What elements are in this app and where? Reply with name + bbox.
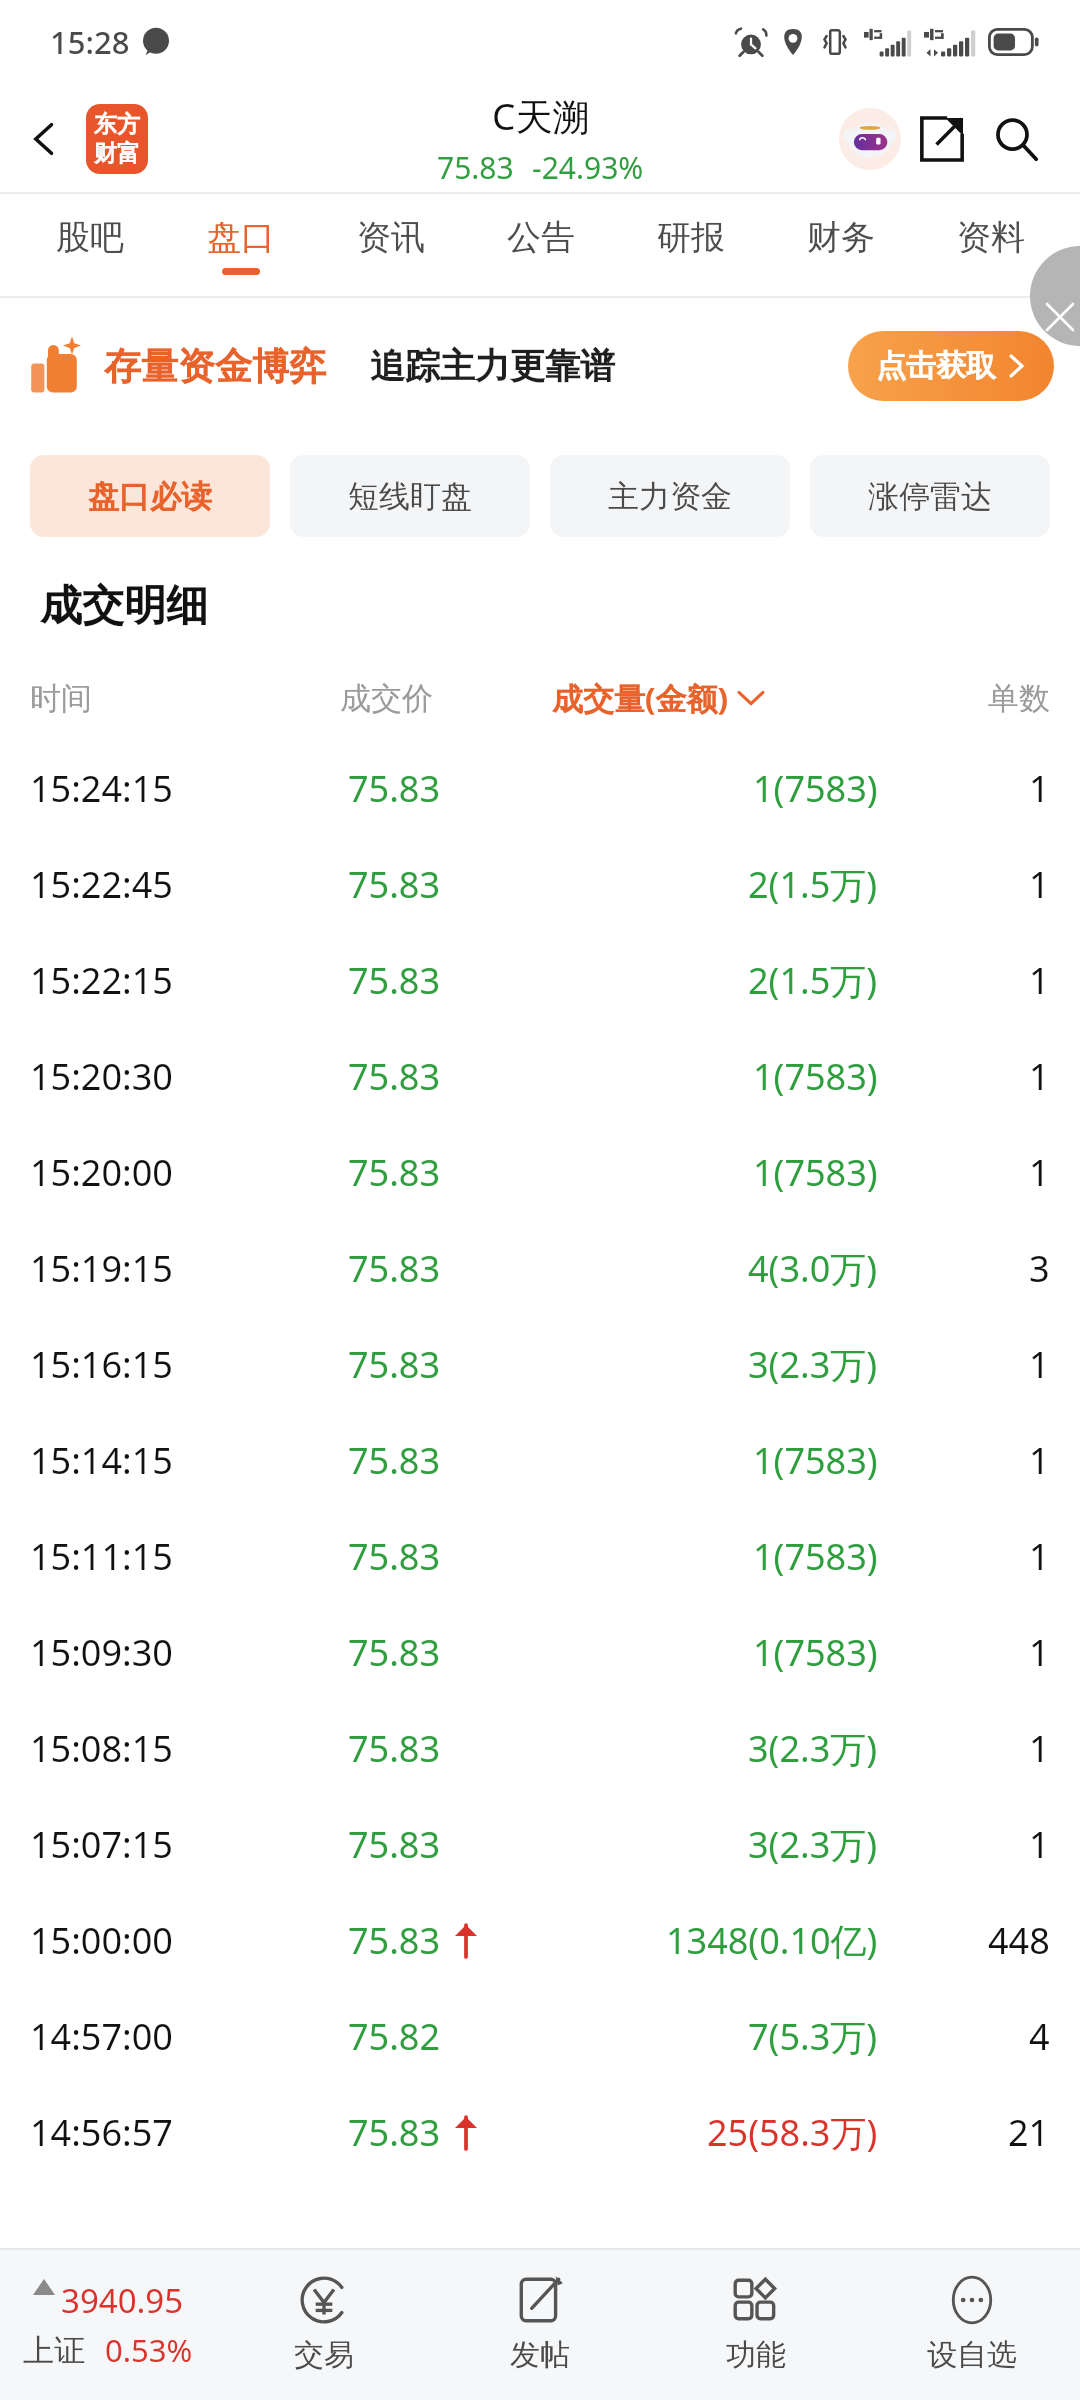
button[interactable]: 14:57:00 [0, 1988, 1080, 2084]
button[interactable]: 资料 [916, 194, 1066, 296]
staticText: 时间 [30, 679, 92, 718]
staticText: 15:20:00 [30, 1148, 173, 1197]
staticText: 公告 [507, 216, 575, 259]
staticText: 2(1.5万) [748, 956, 878, 1005]
staticText: 功能 [726, 2336, 786, 2374]
button[interactable]: Back [12, 107, 76, 171]
staticText: 研报 [657, 216, 725, 259]
staticText: 短线盯盘 [348, 477, 472, 516]
staticText: 15:20:30 [30, 1052, 173, 1101]
button[interactable]: 15:00:00 [0, 1892, 1080, 1988]
staticText: 1 [1029, 764, 1050, 813]
button[interactable]: 交易 [216, 2248, 432, 2400]
staticText: 75.83 [348, 1244, 441, 1293]
staticText: 75.83 [348, 1820, 441, 1869]
button[interactable]: 功能 [648, 2248, 864, 2400]
button[interactable]: 15:09:30 [0, 1604, 1080, 1700]
staticText: 15:22:45 [30, 860, 173, 909]
button[interactable]: 15:24:15 [0, 740, 1080, 836]
staticText: 75.83 [348, 764, 441, 813]
button[interactable]: 设自选 [864, 2248, 1080, 2400]
staticText: 2(1.5万) [748, 860, 878, 909]
button[interactable]: AI assistant [834, 103, 906, 175]
button[interactable]: Share [906, 103, 978, 175]
staticText: 1 [1029, 1724, 1050, 1773]
staticText: 7(5.3万) [748, 2012, 878, 2061]
staticText: 1 [1029, 1820, 1050, 1869]
button[interactable]: Close ad [1030, 296, 1080, 346]
staticText: 1(7583) [753, 1628, 878, 1677]
button[interactable]: 15:16:15 [0, 1316, 1080, 1412]
staticText: 点击获取 [876, 347, 996, 385]
staticText: 财富 [94, 139, 140, 168]
button[interactable]: 研报 [616, 194, 766, 296]
staticText: -24.93% [532, 147, 644, 188]
button[interactable]: 15:20:00 [0, 1124, 1080, 1220]
staticText: 14:56:57 [30, 2108, 173, 2157]
staticText: 75.83 [348, 860, 441, 909]
button[interactable]: 点击获取 [848, 331, 1054, 401]
button[interactable]: East Money [86, 104, 148, 174]
staticText: 1(7583) [753, 1148, 878, 1197]
staticText: 1 [1029, 1052, 1050, 1101]
staticText: 设自选 [927, 2336, 1017, 2374]
button[interactable]: 15:19:15 [0, 1220, 1080, 1316]
button[interactable]: 公告 [466, 194, 616, 296]
staticText: 1(7583) [753, 1052, 878, 1101]
button[interactable]: 涨停雷达 [810, 455, 1050, 537]
staticText: 21 [1008, 2108, 1050, 2157]
staticText: 3(2.3万) [748, 1820, 878, 1869]
button[interactable]: 成交量(金额) [552, 677, 763, 719]
button[interactable]: C天溯 [437, 90, 644, 188]
staticText: 4 [1029, 2012, 1050, 2061]
button[interactable]: 15:22:15 [0, 932, 1080, 1028]
staticText: 15:16:15 [30, 1340, 173, 1389]
staticText: 14:57:00 [30, 2012, 173, 2061]
staticText: 1(7583) [753, 1532, 878, 1581]
button[interactable]: 发帖 [432, 2248, 648, 2400]
staticText: 75.83 [348, 1436, 441, 1485]
staticText: 上证 [23, 2331, 85, 2370]
staticText: 盘口必读 [88, 477, 212, 516]
staticText: 25(58.3万) [707, 2108, 878, 2157]
staticText: 75.83 [348, 1916, 441, 1965]
button[interactable]: 15:11:15 [0, 1508, 1080, 1604]
staticText: 75.83 [348, 1340, 441, 1389]
button[interactable]: 15:14:15 [0, 1412, 1080, 1508]
button[interactable]: 股吧 [14, 194, 165, 296]
staticText: 15:22:15 [30, 956, 173, 1005]
staticText: 75.83 [348, 1724, 441, 1773]
button[interactable]: 资讯 [316, 194, 466, 296]
staticText: 资料 [957, 216, 1025, 259]
staticText: 75.83 [348, 956, 441, 1005]
staticText: 15:28 [50, 21, 130, 63]
button[interactable]: 14:56:57 [0, 2084, 1080, 2180]
button[interactable]: 15:07:15 [0, 1796, 1080, 1892]
button[interactable]: 财务 [766, 194, 916, 296]
staticText: 75.83 [348, 1148, 441, 1197]
button[interactable]: 15:08:15 [0, 1700, 1080, 1796]
button[interactable]: 15:20:30 [0, 1028, 1080, 1124]
button[interactable]: 主力资金 [550, 455, 790, 537]
button[interactable]: 盘口 [165, 194, 316, 296]
button[interactable]: 3940.95 [0, 2248, 216, 2400]
staticText: 存量资金博弈 [104, 343, 326, 390]
staticText: 0.53% [105, 2329, 193, 2371]
staticText: 财务 [807, 216, 875, 259]
staticText: 75.83 [437, 147, 514, 188]
staticText: 3(2.3万) [748, 1340, 878, 1389]
staticText: 成交价 [340, 679, 433, 718]
button[interactable]: 短线盯盘 [290, 455, 530, 537]
staticText: 1348(0.10亿) [666, 1916, 878, 1965]
staticText: 东方 [94, 110, 140, 139]
staticText: 主力资金 [608, 477, 732, 516]
staticText: 追踪主力更靠谱 [370, 344, 615, 388]
staticText: 15:00:00 [30, 1916, 173, 1965]
button[interactable]: Search [978, 101, 1054, 177]
staticText: 1 [1029, 1148, 1050, 1197]
staticText: 股吧 [56, 216, 124, 259]
staticText: 15:07:15 [30, 1820, 173, 1869]
button[interactable]: 盘口必读 [30, 455, 270, 537]
staticText: 75.83 [348, 1628, 441, 1677]
button[interactable]: 15:22:45 [0, 836, 1080, 932]
